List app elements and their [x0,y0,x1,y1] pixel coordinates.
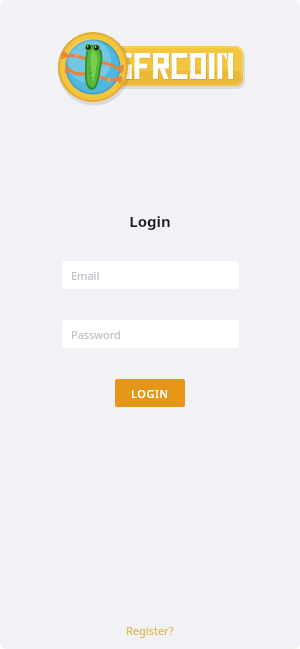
staticText: Email [71,268,100,283]
staticText: LOGIN [131,386,169,401]
button[interactable]: Email [62,261,239,289]
button[interactable]: Register? [116,620,184,641]
staticText: Password [71,327,121,342]
button[interactable]: Password [62,320,239,348]
staticText: Login [129,211,171,231]
staticText: Register? [126,623,174,638]
button[interactable]: LOGIN [115,379,185,407]
